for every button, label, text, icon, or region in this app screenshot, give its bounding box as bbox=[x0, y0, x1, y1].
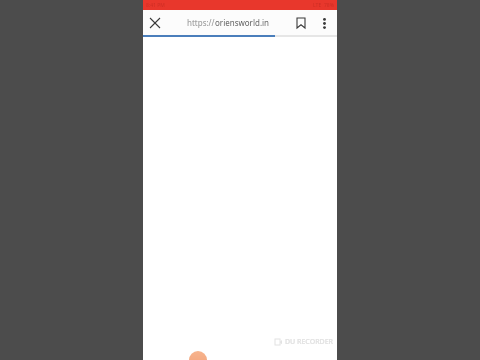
button[interactable]: Bookmark bbox=[289, 11, 313, 35]
staticText: oriensworld.in bbox=[215, 17, 270, 28]
staticText: LTE bbox=[313, 2, 322, 9]
button[interactable]: More options bbox=[313, 12, 335, 34]
staticText: https:// bbox=[187, 17, 215, 28]
staticText: 78% bbox=[324, 2, 334, 9]
button[interactable]: https:// bbox=[167, 10, 289, 35]
button[interactable]: Close bbox=[143, 11, 167, 35]
staticText: DU RECORDER bbox=[284, 337, 333, 347]
staticText: 8:41 PM bbox=[146, 2, 165, 9]
